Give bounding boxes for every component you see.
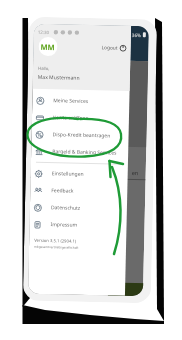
staticText: MM [40,42,56,52]
staticText: Feedback [51,187,74,195]
staticText: mbgesamtvertriebsgesellschaft [34,245,79,250]
staticText: Datenschutz [51,204,81,212]
staticText: en [132,169,139,176]
button[interactable]: Einstellungen [30,165,128,184]
button[interactable]: Profil [38,37,58,56]
staticText: Impressum [50,221,78,229]
staticText: Hallo, [38,66,50,72]
staticText: Bargeld & Banking Services [52,148,117,157]
button[interactable]: Bargeld & Banking Services [31,143,128,162]
button[interactable]: Impressum [29,216,127,235]
staticText: Meine Services [53,97,88,105]
staticText: 36% [132,32,142,38]
button[interactable]: Feedback [30,182,127,201]
button[interactable]: Meine Services [32,92,129,111]
staticText: Logout [101,44,118,52]
staticText: Max Mustermann [38,74,80,82]
staticText: Version 3.5.1 (2904.1) [34,238,76,245]
button[interactable]: Datenschutz [30,199,127,218]
staticText: Dispo-Kredit beantragen [52,131,111,139]
staticText: 12:30 [38,29,50,35]
button[interactable]: Dispo-Kredit beantragen [31,126,129,145]
button[interactable]: Konto eröffnen [32,109,129,128]
staticText: Einstellungen [52,170,84,178]
staticText: Konto eröffnen [53,114,89,122]
button[interactable]: Logout [100,42,128,54]
